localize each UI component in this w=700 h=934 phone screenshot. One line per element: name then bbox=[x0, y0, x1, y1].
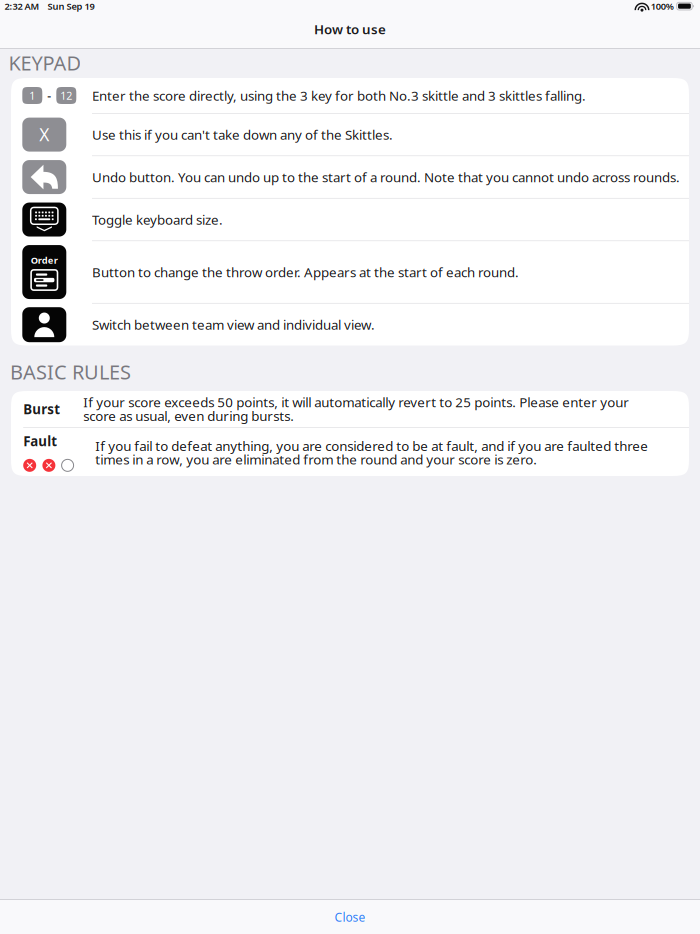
staticText: Button to change the throw order. Appear… bbox=[92, 263, 519, 281]
staticText: 12 bbox=[60, 88, 72, 103]
staticText: - bbox=[47, 87, 51, 103]
staticText: If your score exceeds 50 points, it will… bbox=[83, 395, 629, 423]
button[interactable]: 1 bbox=[11, 78, 689, 113]
staticText: KEYPAD bbox=[8, 49, 81, 76]
staticText: X bbox=[39, 123, 49, 146]
staticText: Toggle keyboard size. bbox=[92, 211, 223, 228]
staticText: Switch between team view and individual … bbox=[92, 316, 375, 333]
staticText: Close bbox=[334, 909, 365, 925]
staticText: If you fail to defeat anything, you are … bbox=[95, 439, 648, 466]
staticText: 100% bbox=[651, 0, 674, 12]
staticText: Fault bbox=[23, 432, 57, 450]
staticText: Enter the score directly, using the 3 ke… bbox=[92, 87, 586, 104]
staticText: Burst bbox=[23, 400, 60, 418]
button[interactable]: Toggle keyboard size. bbox=[11, 199, 689, 240]
staticText: Undo button. You can undo up to the star… bbox=[92, 168, 680, 186]
button[interactable]: X bbox=[11, 114, 689, 155]
button[interactable]: Undo button. You can undo up to the star… bbox=[11, 156, 689, 198]
staticText: Use this if you can't take down any of t… bbox=[92, 126, 393, 143]
staticText: 1 bbox=[29, 88, 35, 103]
staticText: BASIC RULES bbox=[10, 358, 131, 385]
staticText: Order bbox=[31, 254, 58, 266]
button[interactable]: Close bbox=[0, 900, 700, 934]
staticText: 2:32 AM bbox=[4, 0, 39, 12]
staticText: How to use bbox=[314, 20, 386, 38]
button[interactable]: Switch between team view and individual … bbox=[11, 304, 689, 345]
button[interactable]: Order bbox=[11, 241, 689, 303]
staticText: Sun Sep 19 bbox=[47, 0, 94, 12]
